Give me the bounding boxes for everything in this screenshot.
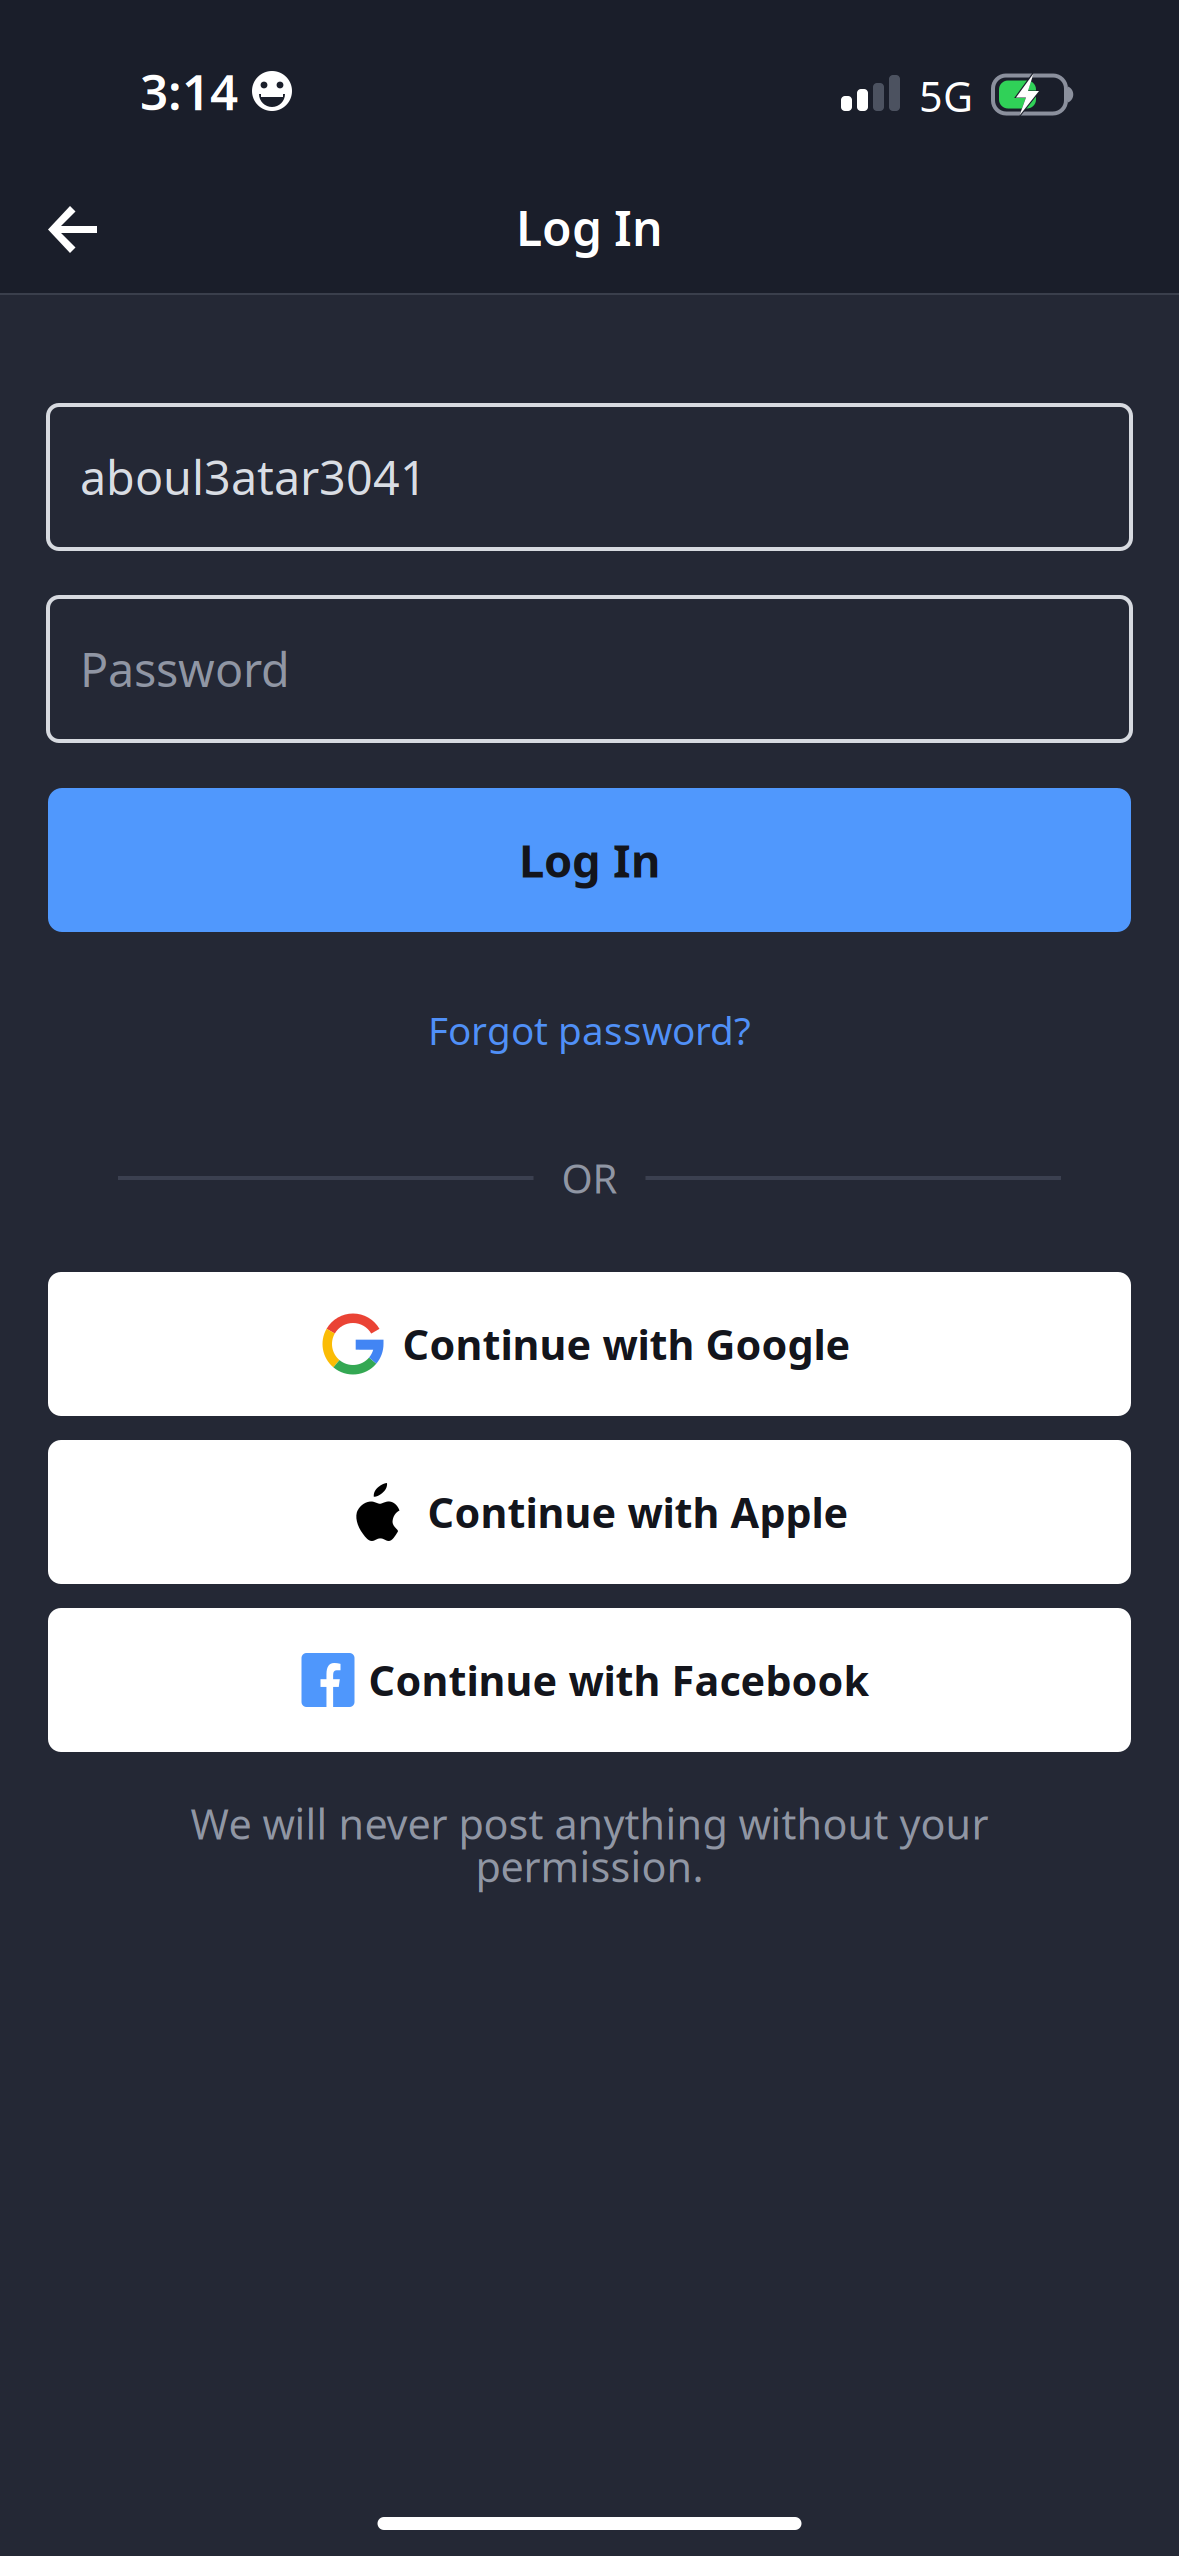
staticText: Continue with Google <box>402 1317 850 1371</box>
staticText: 3:14 <box>140 58 238 124</box>
staticText: Password <box>80 638 290 700</box>
button[interactable]: Log In <box>48 788 1131 932</box>
button[interactable]: Continue with Google <box>48 1272 1131 1416</box>
staticText: Log In <box>519 830 660 890</box>
button[interactable]: Forgot password? <box>398 1004 781 1056</box>
staticText: OR <box>561 1151 617 1204</box>
button[interactable]: Continue with Facebook <box>48 1608 1131 1752</box>
staticText: aboul3atar3041 <box>80 446 427 508</box>
button[interactable]: Back <box>0 187 124 287</box>
staticText: Continue with Apple <box>427 1485 848 1539</box>
staticText: Continue with Facebook <box>368 1653 869 1707</box>
staticText: Forgot password? <box>428 1004 751 1056</box>
button[interactable]: Continue with Apple <box>48 1440 1131 1584</box>
staticText: permission. <box>475 1839 703 1894</box>
staticText: 5G <box>919 69 973 123</box>
staticText: Log In <box>516 195 663 259</box>
staticText: We will never post anything without your <box>190 1796 988 1851</box>
